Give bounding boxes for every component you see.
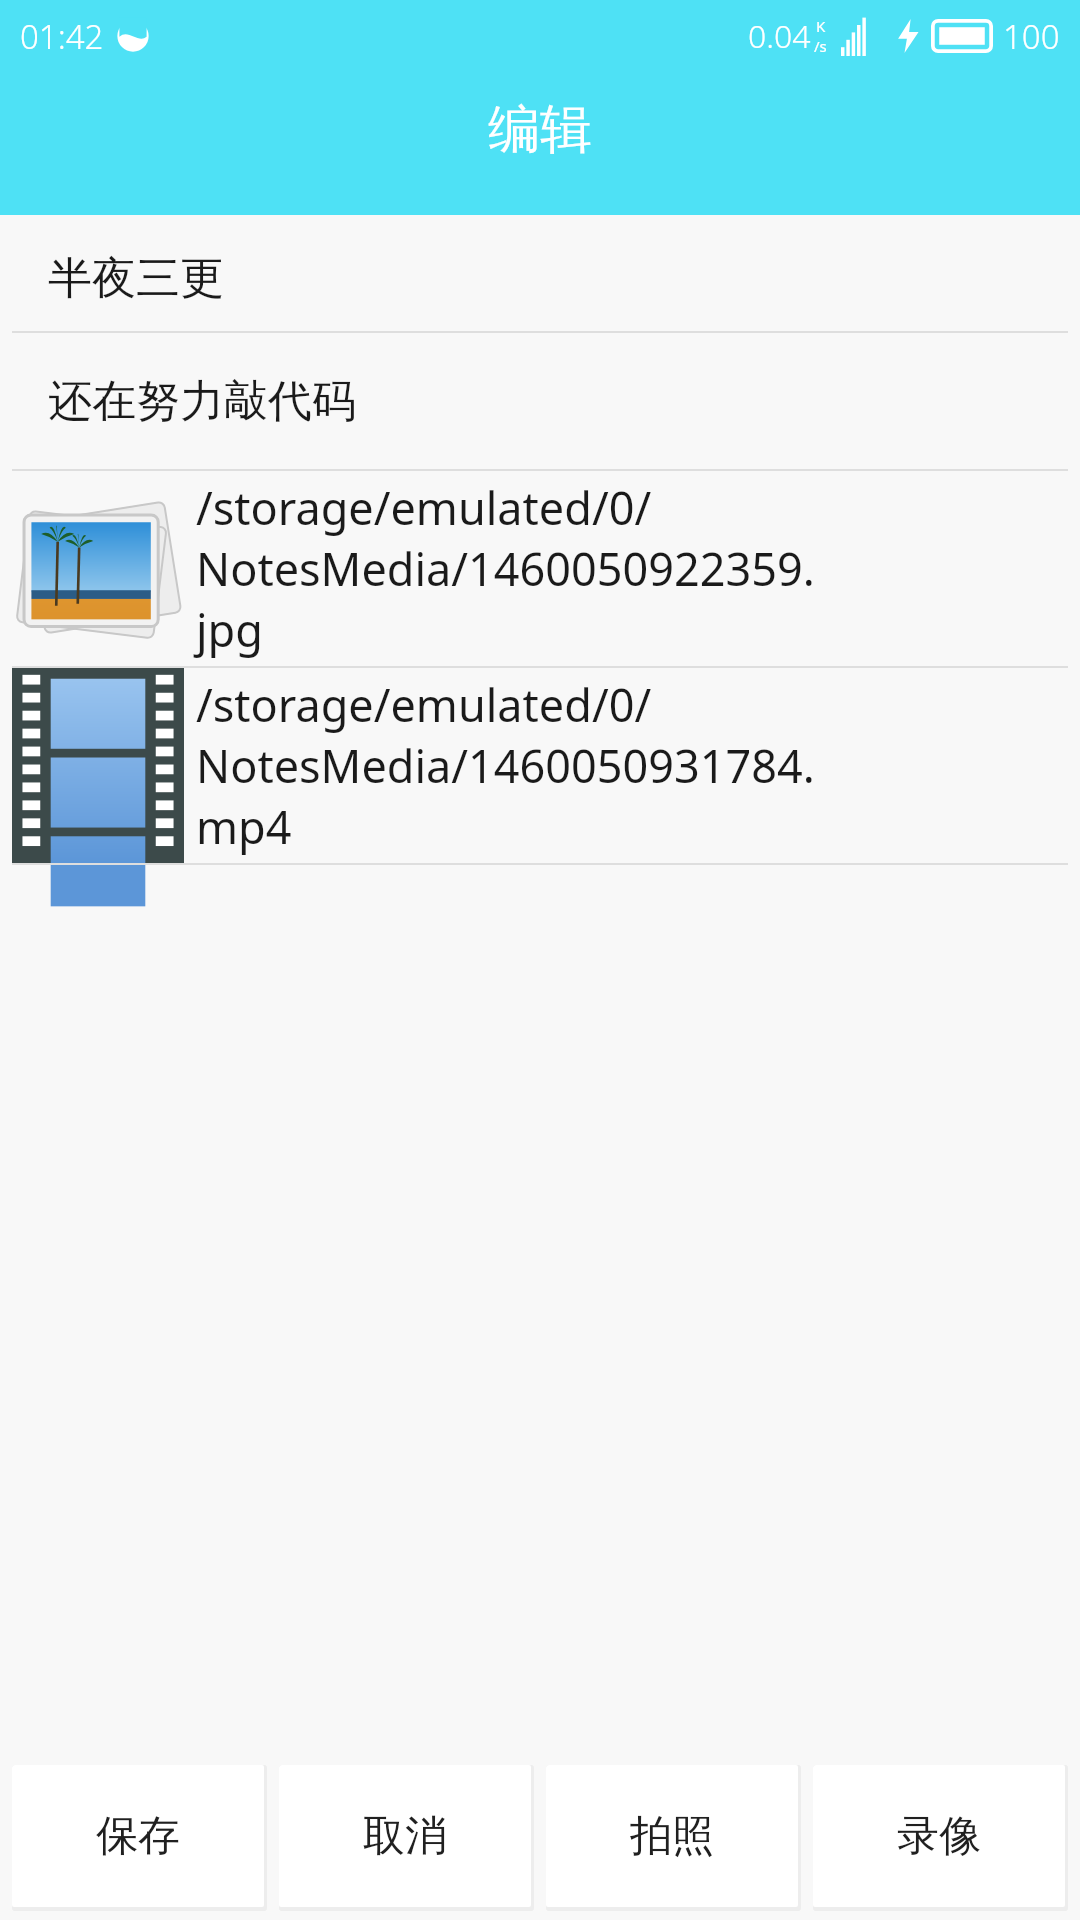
staticText: K [816,16,826,36]
button[interactable]: 保存 [12,1765,264,1907]
staticText: /storage/emulated/0/ [196,477,652,538]
staticText: 01:42 [20,14,104,59]
staticText: NotesMedia/1460050931784. [196,735,815,796]
staticText: 录像 [897,1810,981,1863]
staticText: 编辑 [488,97,592,163]
button[interactable]: 半夜三更 [0,226,1080,331]
other: Photo thumbnail [12,479,184,659]
staticText: mp4 [196,796,292,857]
staticText: 还在努力敲代码 [48,374,356,429]
button[interactable]: 取消 [279,1765,531,1907]
button[interactable]: Photo thumbnail [0,471,1080,666]
staticText: NotesMedia/1460050922359. [196,538,815,599]
staticText: /storage/emulated/0/ [196,674,652,735]
staticText: jpg [196,599,263,660]
staticText: /s [814,36,827,56]
staticText: 保存 [96,1810,180,1863]
button[interactable]: 录像 [813,1765,1065,1907]
button[interactable]: 拍照 [546,1765,798,1907]
other: Video thumbnail [12,668,184,863]
staticText: 0.04 [748,14,811,58]
staticText: 100 [1003,14,1060,59]
button[interactable]: Video thumbnail [0,668,1080,863]
staticText: 拍照 [630,1810,714,1863]
staticText: 取消 [363,1810,447,1863]
button[interactable]: 还在努力敲代码 [0,333,1080,469]
staticText: 半夜三更 [48,251,224,306]
